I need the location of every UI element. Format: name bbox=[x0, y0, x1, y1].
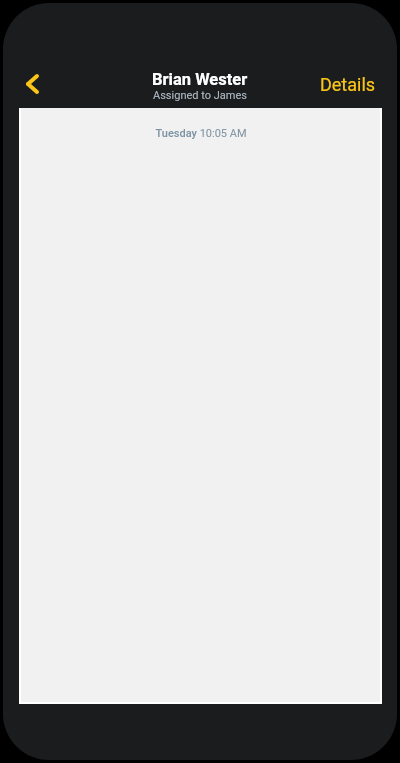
staticText: Assigned to James bbox=[153, 89, 247, 102]
button[interactable]: Brian Wester bbox=[136, 70, 264, 106]
button[interactable]: Back bbox=[14, 62, 51, 106]
staticText: Tuesday 10:05 AM bbox=[155, 127, 247, 140]
staticText: Details bbox=[320, 74, 376, 95]
button[interactable]: Details bbox=[314, 66, 388, 102]
staticText: Brian Wester bbox=[152, 70, 248, 89]
